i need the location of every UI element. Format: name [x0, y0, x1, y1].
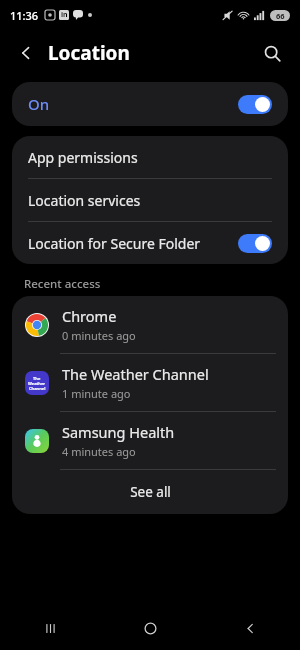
staticText: 66 — [276, 11, 285, 21]
staticText: The Weather Channel — [62, 364, 209, 384]
button[interactable]: Location for Secure Folder — [12, 222, 288, 264]
staticText: 11:36 — [10, 8, 39, 23]
button[interactable]: The — [12, 354, 288, 411]
staticText: Samsung Health — [62, 422, 175, 442]
staticText: Chrome — [62, 306, 117, 326]
staticText: See all — [130, 483, 171, 501]
button[interactable]: On — [12, 82, 288, 126]
button[interactable]: Recents — [0, 606, 100, 650]
button[interactable]: Toggle — [238, 234, 272, 253]
button[interactable]: Chrome — [12, 296, 288, 353]
staticText: in — [61, 10, 68, 20]
button[interactable]: Back — [8, 35, 44, 71]
button[interactable]: Search — [254, 35, 290, 71]
staticText: The — [33, 376, 41, 381]
staticText: On — [28, 94, 50, 114]
staticText: 4 minutes ago — [62, 444, 136, 459]
button[interactable]: See all — [12, 470, 288, 514]
button[interactable]: Back — [200, 606, 300, 650]
button[interactable]: Home — [100, 606, 200, 650]
button[interactable]: App permissions — [12, 136, 288, 178]
staticText: Location for Secure Folder — [28, 234, 201, 253]
button[interactable]: Location services — [12, 179, 288, 221]
staticText: Recent access — [24, 276, 101, 292]
staticText: App permissions — [28, 148, 138, 167]
staticText: 0 minutes ago — [62, 328, 136, 343]
staticText: Channel — [29, 386, 46, 391]
staticText: Weather — [28, 381, 46, 386]
staticText: Location services — [28, 191, 141, 210]
staticText: 1 minute ago — [62, 386, 131, 401]
button[interactable]: Toggle — [238, 95, 272, 114]
button[interactable]: Samsung Health — [12, 412, 288, 469]
staticText: Location — [48, 40, 130, 66]
